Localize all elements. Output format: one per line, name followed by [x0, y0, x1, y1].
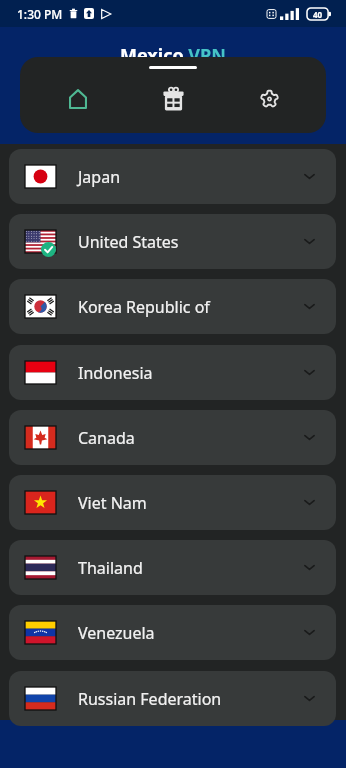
button[interactable]: Venezuela: [9, 605, 336, 660]
button[interactable]: Korea Republic of: [9, 279, 336, 334]
button[interactable]: Indonesia: [9, 345, 336, 400]
button[interactable]: Settings: [231, 71, 307, 127]
staticText: Korea Republic of: [78, 296, 210, 318]
staticText: Thailand: [78, 557, 143, 579]
button[interactable]: Japan: [9, 149, 336, 204]
staticText: United States: [78, 231, 179, 253]
staticText: Canada: [78, 427, 135, 449]
staticText: Japan: [78, 166, 121, 188]
button[interactable]: Viet Nam: [9, 475, 336, 530]
staticText: Russian Federation: [78, 688, 222, 710]
button[interactable]: Russian Federation: [9, 671, 336, 726]
button[interactable]: Rewards: [135, 71, 211, 127]
staticText: Mexico VPN: [120, 43, 226, 68]
staticText: Indonesia: [78, 362, 153, 384]
button[interactable]: Canada: [9, 410, 336, 465]
button[interactable]: United States: [9, 214, 336, 269]
button[interactable]: Thailand: [9, 540, 336, 595]
staticText: 40: [313, 9, 323, 20]
staticText: Venezuela: [78, 622, 155, 644]
staticText: Viet Nam: [78, 492, 147, 514]
button[interactable]: Home: [40, 71, 116, 127]
staticText: 1:30 PM: [17, 6, 63, 22]
